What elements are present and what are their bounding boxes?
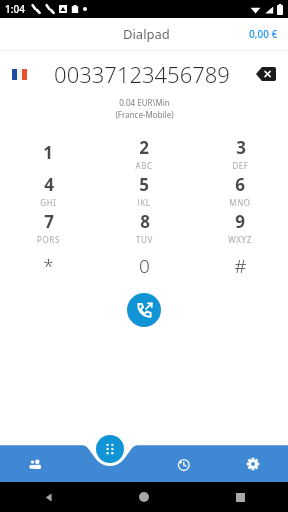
button[interactable]: 1 <box>0 134 96 171</box>
staticText: 0,00 € <box>249 27 278 41</box>
button[interactable]: Backspace <box>252 62 280 86</box>
staticText: WXYZ <box>228 234 252 243</box>
button[interactable]: 7 <box>0 208 96 245</box>
button[interactable]: # <box>192 245 288 287</box>
staticText: ABC <box>135 160 153 169</box>
button[interactable]: 5 <box>96 171 192 208</box>
staticText: 8 <box>140 210 150 233</box>
button[interactable]: 4 <box>0 171 96 208</box>
staticText: 3 <box>236 136 246 159</box>
staticText: GHI <box>40 197 57 206</box>
button[interactable]: Settings <box>218 446 288 482</box>
button[interactable]: 9 <box>192 208 288 245</box>
staticText: PQRS <box>37 234 60 243</box>
staticText: * <box>43 253 54 279</box>
button[interactable]: 0,00 € <box>239 21 288 47</box>
staticText: 0.04 EUR\Min <box>119 97 170 108</box>
staticText: MNO <box>229 197 251 206</box>
staticText: # <box>234 253 247 279</box>
button[interactable]: * <box>0 245 96 287</box>
staticText: 9 <box>235 210 245 233</box>
staticText: DEF <box>232 160 249 169</box>
staticText: 1 <box>43 141 53 164</box>
staticText: (France-Mobile) <box>115 109 174 120</box>
staticText: TUV <box>136 234 153 243</box>
staticText: 1:04 <box>5 2 25 16</box>
staticText: 6 <box>235 173 245 196</box>
staticText: 7 <box>44 210 54 233</box>
staticText: Dialpad <box>123 25 170 43</box>
button[interactable]: 8 <box>96 208 192 245</box>
button[interactable]: 3 <box>192 134 288 171</box>
button[interactable]: 2 <box>96 134 192 171</box>
button[interactable]: 0 <box>96 245 192 287</box>
staticText: 5 <box>139 173 149 196</box>
staticText: 0 <box>139 253 150 279</box>
staticText: 2 <box>139 136 149 159</box>
button[interactable]: Call <box>127 293 161 327</box>
button[interactable]: Dialpad <box>96 435 124 463</box>
staticText: JKL <box>137 197 151 206</box>
button[interactable] <box>8 65 31 84</box>
button[interactable]: Contacts <box>0 446 71 482</box>
staticText: 00337123456789 <box>54 59 230 89</box>
button[interactable]: 6 <box>192 171 288 208</box>
staticText: 4 <box>44 173 54 196</box>
button[interactable]: History <box>148 446 218 482</box>
